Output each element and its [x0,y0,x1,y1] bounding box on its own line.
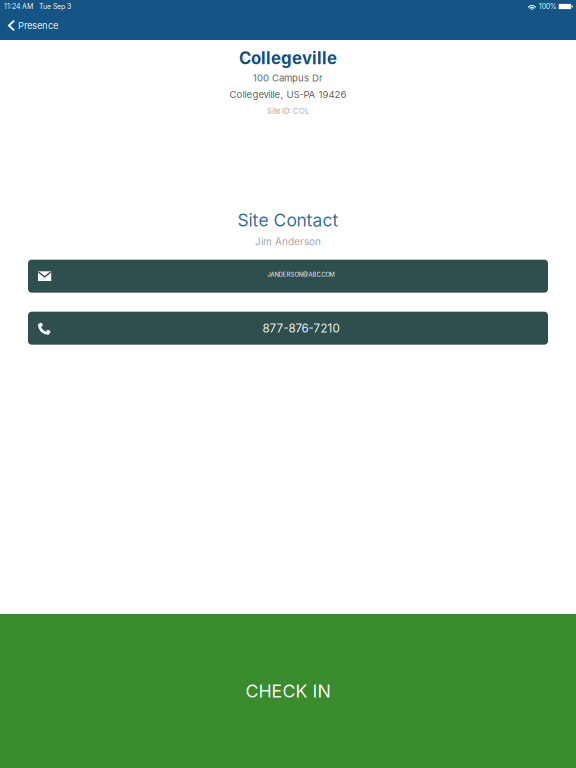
staticText: 11:24 AM [4,2,33,11]
staticText: CHECK IN [245,680,330,702]
staticText: 877-876-7210 [262,321,339,335]
staticText: JANDERSON@ABC.COM [267,271,334,278]
staticText: Tue Sep 3 [39,2,71,11]
staticText: Site ID: COL [267,106,309,116]
staticText: 100 Campus Dr [253,72,323,84]
staticText: Collegeville [239,48,337,68]
staticText: 100% [539,2,557,11]
button[interactable]: Email JANDERSON@ABC.COM [28,260,548,293]
button[interactable]: Back to Presence [0,13,68,40]
staticText: Collegeville, US-PA 19426 [229,89,346,100]
staticText: Jim Anderson [255,236,321,248]
staticText: Site Contact [237,210,338,231]
button[interactable]: Call 877-876-7210 [28,312,548,345]
staticText: Presence [18,20,58,31]
button[interactable]: CHECK IN [0,614,576,768]
